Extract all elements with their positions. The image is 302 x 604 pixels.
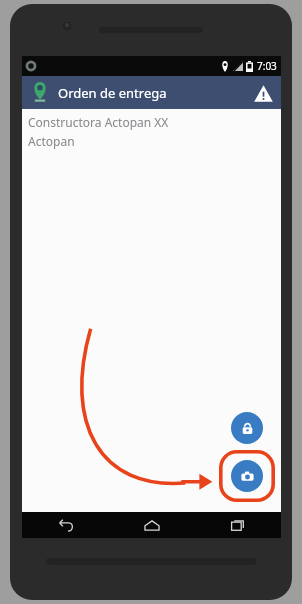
staticText: Orden de entrega xyxy=(58,84,167,102)
button[interactable]: Back xyxy=(22,512,109,538)
staticText: Actopan xyxy=(28,133,75,149)
button[interactable]: Recents xyxy=(195,512,281,538)
button[interactable]: Lock order xyxy=(231,412,263,444)
staticText: Constructora Actopan XX xyxy=(28,114,169,130)
button[interactable]: Warning xyxy=(249,79,277,107)
button[interactable]: App logo xyxy=(25,78,55,108)
staticText: 7:03 xyxy=(257,59,277,73)
button[interactable]: Take photo xyxy=(231,460,263,492)
button[interactable]: Home xyxy=(109,512,195,538)
